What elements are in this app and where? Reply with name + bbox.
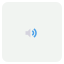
button[interactable]: Volume [25, 28, 38, 38]
